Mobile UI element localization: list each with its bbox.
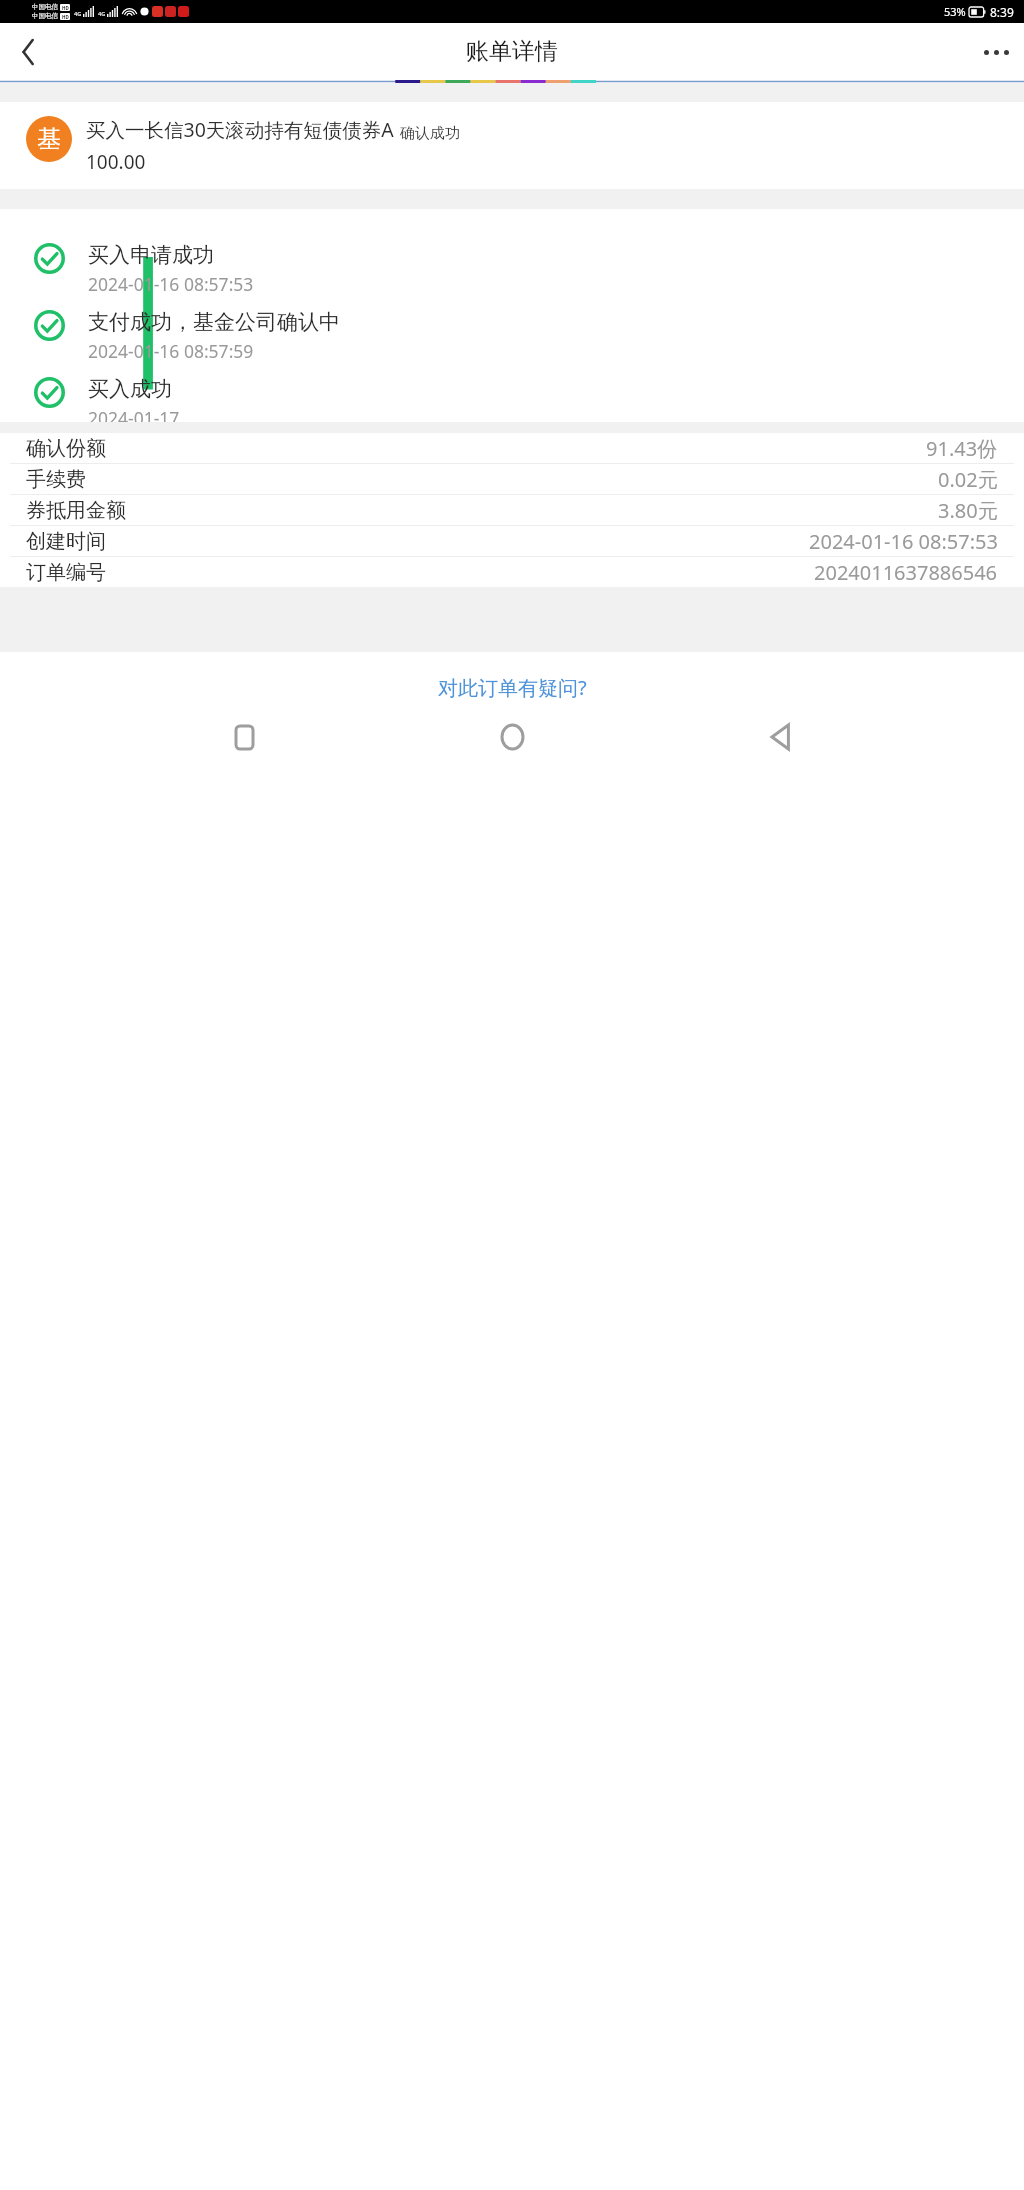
staticText: 中国电信 — [32, 3, 58, 11]
staticText: 券抵用金额 — [26, 498, 126, 523]
staticText: 手续费 — [26, 467, 86, 492]
staticText: 创建时间 — [26, 529, 106, 554]
staticText: 100.00 — [86, 149, 146, 175]
button[interactable]: Back — [756, 714, 804, 760]
staticText: HD — [62, 5, 69, 11]
staticText: 4G — [98, 10, 106, 17]
staticText: 2024011637886546 — [814, 559, 998, 586]
staticText: 2024-01-16 08:57:59 — [88, 339, 254, 363]
button[interactable]: Home — [488, 714, 536, 760]
staticText: 0.02元 — [938, 466, 998, 493]
button[interactable]: Back — [0, 24, 56, 80]
staticText: 3.80元 — [938, 497, 998, 524]
button[interactable]: 创建时间 — [0, 526, 1024, 556]
button[interactable]: 确认份额 — [0, 433, 1024, 463]
staticText: 买入申请成功 — [88, 242, 214, 268]
staticText: 账单详情 — [466, 37, 558, 66]
staticText: 基 — [37, 124, 61, 154]
button[interactable]: 对此订单有疑问? — [426, 670, 599, 705]
button[interactable]: 基 — [0, 102, 1024, 189]
button[interactable]: 券抵用金额 — [0, 495, 1024, 525]
staticText: 确认成功 — [400, 124, 460, 143]
staticText: 4G — [74, 10, 82, 17]
staticText: 买入成功 — [88, 376, 172, 402]
staticText: 53% — [944, 4, 966, 19]
staticText: 确认份额 — [26, 436, 106, 461]
staticText: 2024-01-17 — [88, 406, 180, 422]
staticText: 2024-01-16 08:57:53 — [88, 272, 254, 296]
staticText: 91.43份 — [926, 435, 998, 462]
button[interactable]: Recents — [220, 714, 268, 760]
button[interactable]: 手续费 — [0, 464, 1024, 494]
staticText: 对此订单有疑问? — [438, 674, 587, 701]
staticText: 买入一长信30天滚动持有短债债券A — [86, 116, 394, 143]
button[interactable]: More options — [968, 24, 1024, 80]
button[interactable]: 订单编号 — [0, 557, 1024, 587]
staticText: 中国电信 — [32, 12, 58, 20]
staticText: 2024-01-16 08:57:53 — [809, 528, 998, 555]
staticText: HD — [62, 14, 69, 20]
staticText: 支付成功，基金公司确认中 — [88, 309, 340, 335]
staticText: 订单编号 — [26, 560, 106, 585]
staticText: 8:39 — [990, 4, 1014, 20]
